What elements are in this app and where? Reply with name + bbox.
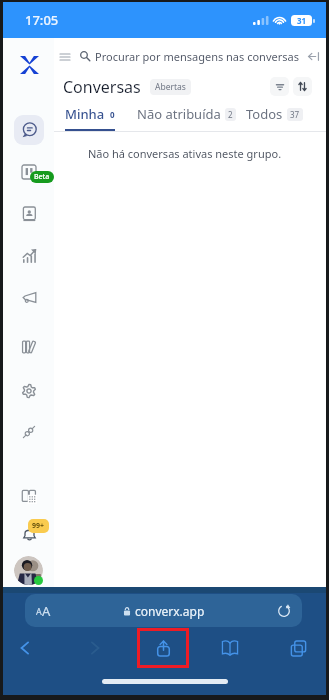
staticText: 37 <box>290 109 300 120</box>
button[interactable]: Ordenar <box>293 77 312 96</box>
button[interactable]: Todos <box>246 105 303 131</box>
staticText: 17:05 <box>25 11 59 29</box>
button[interactable]: Minha <box>65 105 115 131</box>
button[interactable]: Relatorios <box>14 240 44 270</box>
button[interactable]: Conversas <box>14 115 44 145</box>
staticText: Não há conversas ativas neste grupo. <box>54 146 315 161</box>
staticText: Beta <box>34 172 50 182</box>
staticText: Todos <box>246 105 283 123</box>
button[interactable]: Ajuda <box>14 481 44 511</box>
button[interactable]: Favoritos <box>214 632 246 664</box>
staticText: Não atribuída <box>137 105 221 123</box>
button[interactable]: Compartilhar <box>137 628 189 668</box>
button[interactable]: Logo <box>15 51 43 79</box>
button[interactable]: Notificacoes <box>14 517 44 547</box>
staticText: Minha <box>65 105 105 123</box>
staticText: Procurar por mensagens nas conversas <box>95 49 299 64</box>
button[interactable]: Abas <box>282 632 314 664</box>
staticText: Conversas <box>63 76 141 98</box>
button[interactable]: Menu <box>57 49 72 64</box>
button[interactable]: Recolher <box>306 49 320 63</box>
button[interactable]: Integracoes <box>14 417 44 447</box>
button[interactable]: Biblioteca <box>14 332 44 362</box>
button[interactable]: A <box>25 594 302 627</box>
button[interactable]: Não atribuída <box>137 105 236 131</box>
staticText: 2 <box>228 109 233 120</box>
button[interactable]: Kanban Beta <box>14 157 44 187</box>
staticText: converx.app <box>135 603 205 619</box>
button[interactable]: Campanhas <box>14 282 44 312</box>
staticText: A <box>36 605 42 617</box>
staticText: Abertas <box>155 81 186 93</box>
button[interactable]: Perfil <box>14 556 43 585</box>
button[interactable]: Filtrar <box>270 77 289 96</box>
staticText: 31 <box>297 15 307 26</box>
button[interactable]: Configuracoes <box>14 376 44 406</box>
button[interactable]: Contatos <box>14 199 44 229</box>
staticText: 0 <box>110 109 115 120</box>
staticText: A <box>42 602 51 620</box>
button[interactable]: Voltar <box>9 632 41 664</box>
staticText: 99+ <box>32 521 45 531</box>
